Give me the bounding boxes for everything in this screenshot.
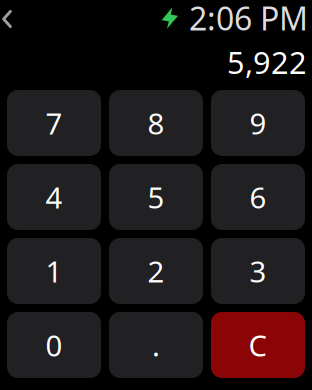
button[interactable]: .: [109, 312, 203, 378]
staticText: 7: [45, 103, 62, 142]
button[interactable]: 0: [7, 312, 101, 378]
staticText: 2: [147, 251, 164, 290]
staticText: 4: [45, 177, 62, 216]
staticText: 6: [249, 177, 266, 216]
button[interactable]: 5: [109, 164, 203, 230]
staticText: 5: [147, 177, 164, 216]
button[interactable]: 6: [211, 164, 305, 230]
button[interactable]: Back: [0, 5, 18, 33]
button[interactable]: 8: [109, 90, 203, 156]
button[interactable]: 4: [7, 164, 101, 230]
staticText: 0: [45, 325, 62, 364]
button[interactable]: C: [211, 312, 305, 378]
button[interactable]: 2: [109, 238, 203, 304]
button[interactable]: 1: [7, 238, 101, 304]
button[interactable]: 7: [7, 90, 101, 156]
staticText: 9: [249, 103, 266, 142]
staticText: C: [248, 325, 267, 364]
staticText: 5,922: [227, 42, 307, 82]
staticText: 3: [249, 251, 266, 290]
button[interactable]: 9: [211, 90, 305, 156]
staticText: .: [152, 325, 160, 364]
button[interactable]: 3: [211, 238, 305, 304]
staticText: 1: [45, 251, 62, 290]
staticText: 2:06 PM: [189, 0, 308, 39]
staticText: 8: [147, 103, 164, 142]
